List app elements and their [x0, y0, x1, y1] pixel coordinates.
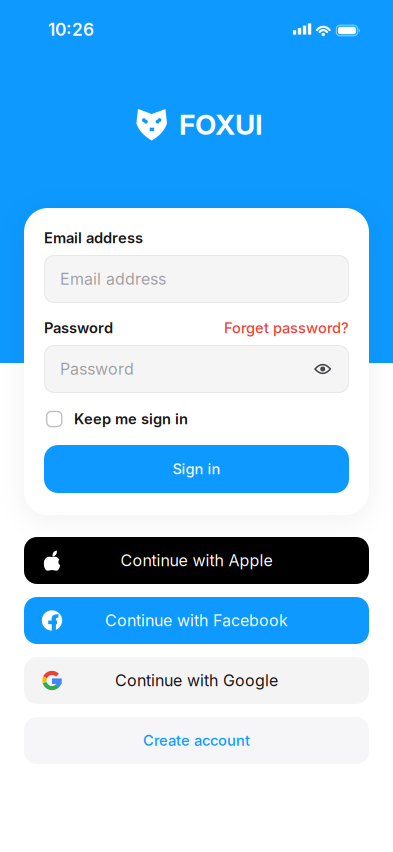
- button[interactable]: Keep me sign in: [44, 410, 349, 428]
- staticText: Continue with Google: [115, 671, 278, 690]
- button[interactable]: Show password: [314, 364, 331, 374]
- button[interactable]: Continue with Apple: [24, 537, 369, 584]
- button[interactable]: Continue with Google: [24, 657, 369, 704]
- staticText: Create account: [143, 732, 250, 749]
- staticText: Keep me sign in: [74, 410, 188, 428]
- staticText: Email address: [60, 270, 166, 288]
- staticText: 10:26: [48, 19, 94, 40]
- staticText: Sign in: [172, 460, 220, 478]
- button[interactable]: Continue with Facebook: [24, 597, 369, 644]
- button[interactable]: Sign in: [44, 445, 349, 493]
- staticText: FOXUI: [179, 108, 263, 141]
- staticText: Email address: [44, 229, 143, 247]
- staticText: Continue with Facebook: [105, 611, 288, 630]
- staticText: Forget password?: [224, 319, 349, 337]
- staticText: Continue with Apple: [120, 551, 272, 570]
- staticText: Password: [44, 319, 113, 337]
- staticText: Password: [60, 360, 134, 378]
- button[interactable]: Forget password?: [224, 319, 349, 337]
- button[interactable]: Create account: [24, 717, 369, 764]
